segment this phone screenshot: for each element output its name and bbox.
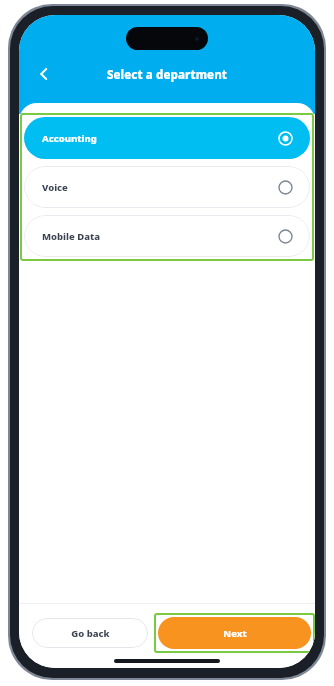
button[interactable]: Accounting	[24, 117, 310, 159]
staticText: Next	[223, 627, 247, 640]
staticText: Voice	[42, 181, 278, 194]
button[interactable]: Voice	[24, 166, 310, 208]
staticText: Go back	[71, 627, 110, 640]
staticText: Accounting	[42, 132, 278, 145]
staticText: Mobile Data	[42, 230, 278, 243]
button[interactable]: Next	[158, 617, 311, 649]
button[interactable]: Back	[27, 57, 61, 91]
staticText: Select a department	[19, 67, 315, 83]
button[interactable]: Mobile Data	[24, 215, 310, 257]
button[interactable]: Go back	[32, 618, 148, 648]
